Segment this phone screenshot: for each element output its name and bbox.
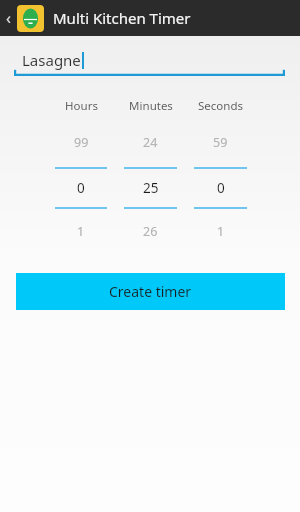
button[interactable]: 0 [194, 169, 247, 207]
staticText: ‹ [6, 7, 11, 29]
button[interactable]: 25 [124, 169, 177, 207]
button[interactable]: App icon [17, 5, 44, 32]
staticText: Multi Kitchen Timer [53, 8, 191, 28]
staticText: Minutes [129, 98, 173, 114]
staticText: 26 [143, 223, 158, 240]
button[interactable]: 0 [55, 169, 107, 207]
staticText: 25 [143, 179, 159, 197]
button[interactable]: Back [0, 0, 17, 36]
staticText: 1 [217, 223, 225, 240]
staticText: Seconds [198, 98, 243, 114]
staticText: 59 [213, 134, 228, 151]
staticText: Hours [65, 98, 98, 114]
staticText: 24 [143, 134, 158, 151]
staticText: 0 [217, 179, 225, 197]
staticText: Create timer [109, 282, 192, 301]
staticText: 99 [74, 134, 89, 151]
staticText: 0 [77, 179, 85, 197]
button[interactable]: Lasagne [14, 36, 285, 76]
staticText: Lasagne [22, 50, 81, 70]
button[interactable]: Create timer [16, 273, 285, 310]
staticText: 1 [77, 223, 85, 240]
